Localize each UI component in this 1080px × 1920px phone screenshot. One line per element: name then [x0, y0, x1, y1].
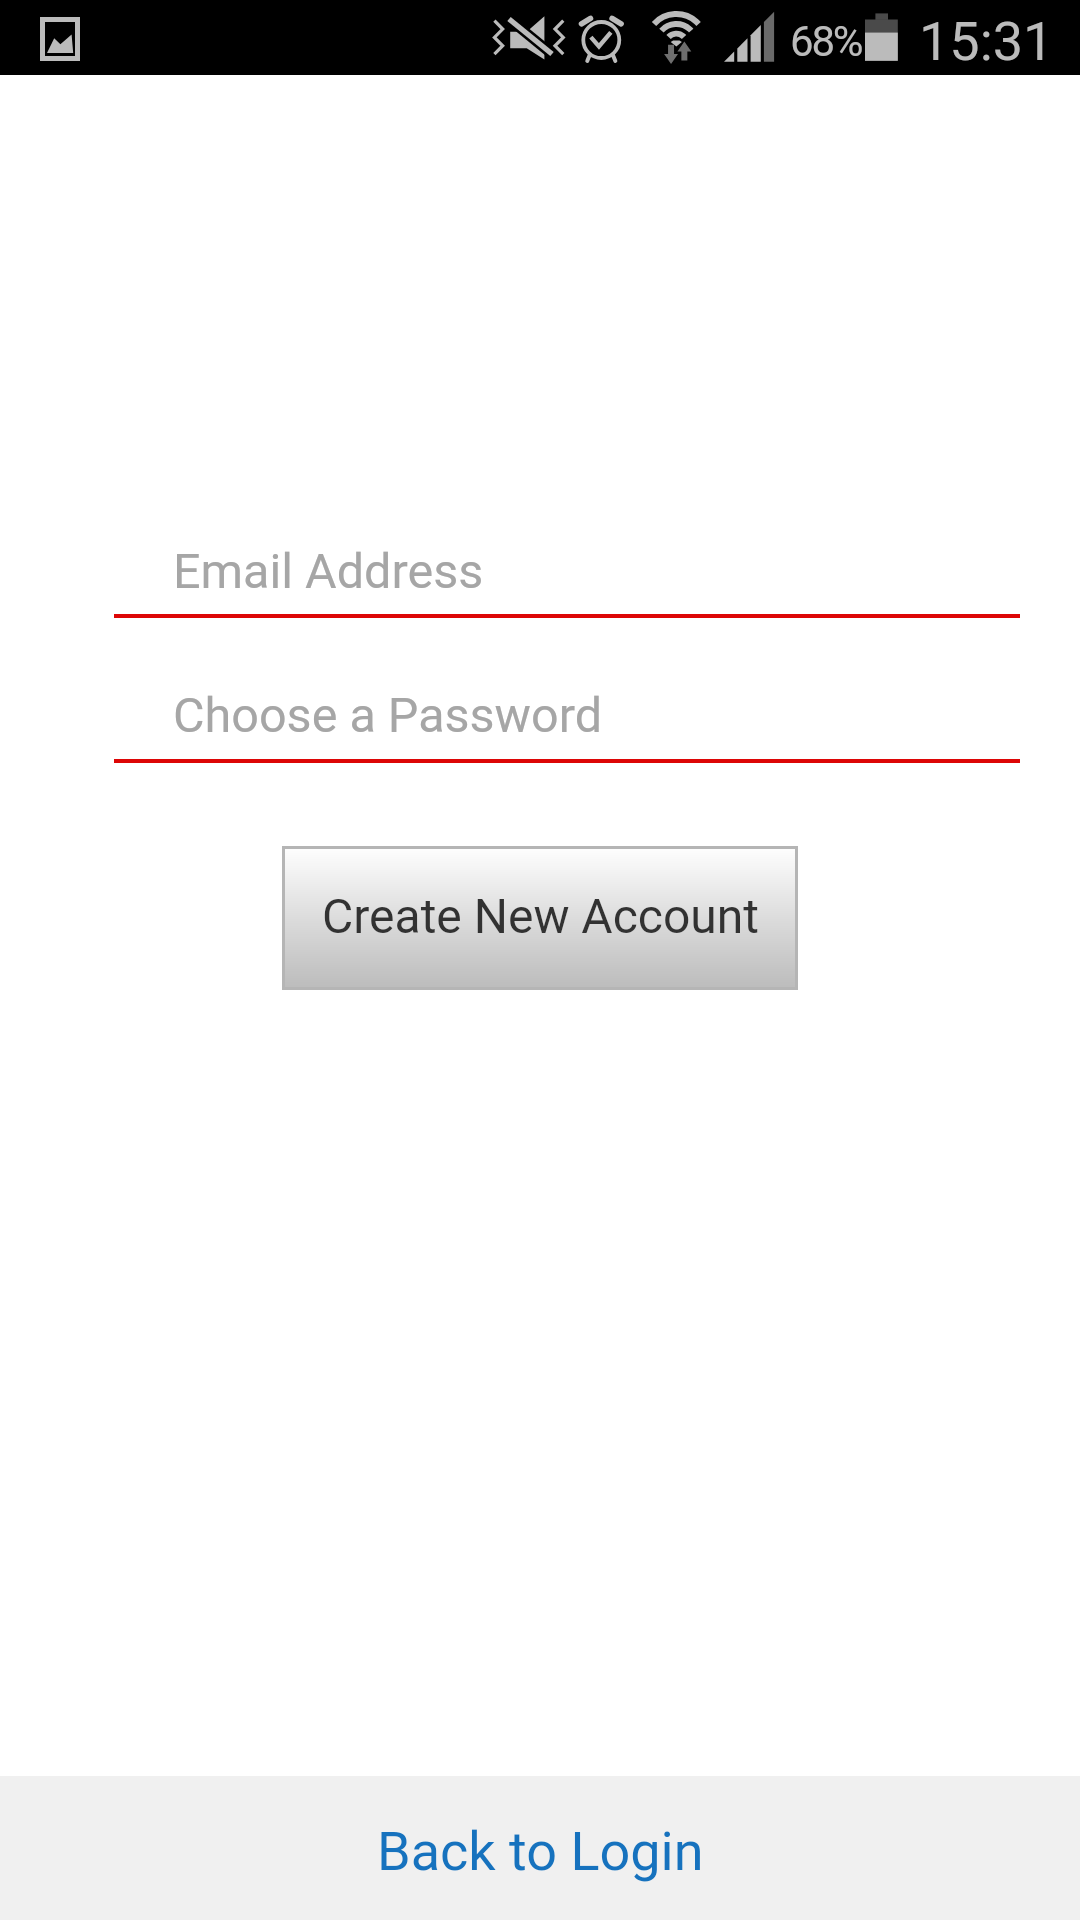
staticText: Back to Login [377, 1820, 704, 1883]
staticText: Email Address [173, 543, 484, 600]
button[interactable]: Back to Login [0, 1776, 1080, 1920]
button[interactable]: Choose a Password [114, 687, 1020, 763]
button[interactable]: Create New Account [282, 846, 798, 990]
staticText: 68% [790, 17, 862, 66]
other: Status icons [0, 0, 1080, 75]
button[interactable]: Email Address [114, 543, 1020, 618]
staticText: Create New Account [322, 888, 759, 944]
staticText: Choose a Password [173, 687, 603, 744]
staticText: 15:31 [919, 10, 1054, 73]
